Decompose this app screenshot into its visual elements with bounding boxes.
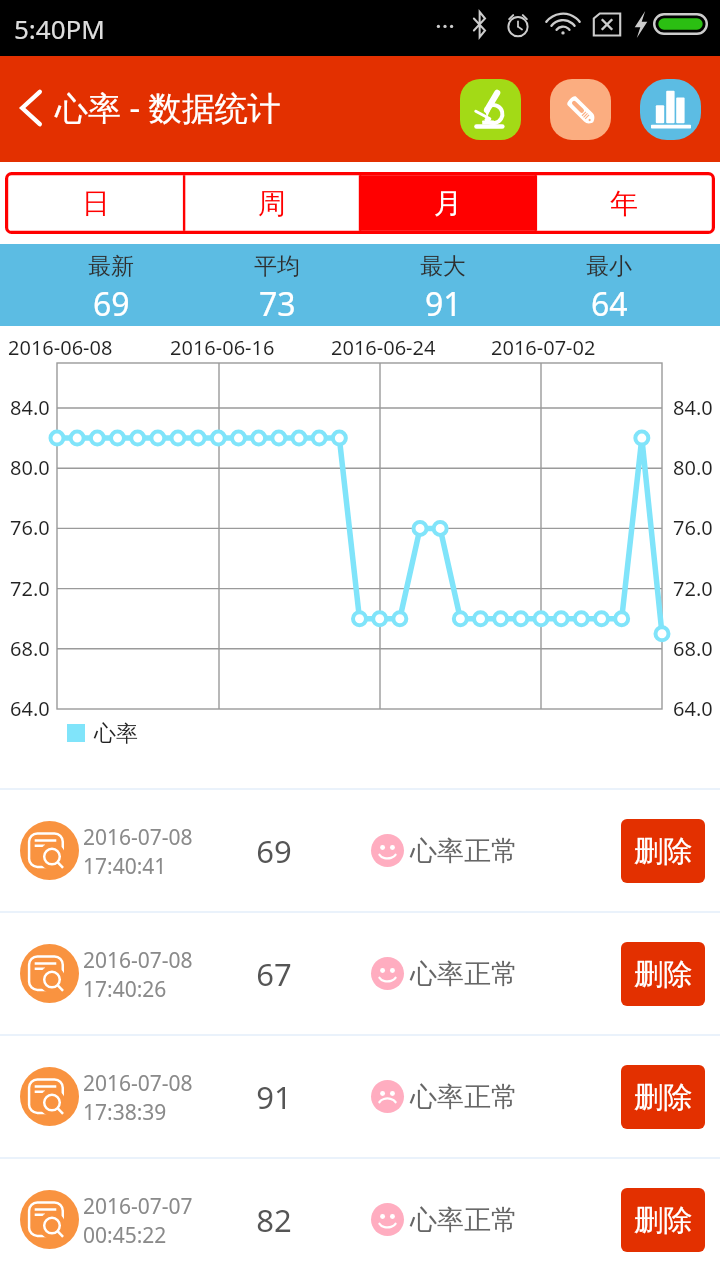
button[interactable]: 2016-07-07 <box>0 1159 720 1280</box>
staticText: 删除 <box>634 956 692 993</box>
staticText: 73 <box>259 282 296 326</box>
button[interactable]: 删除 <box>621 1188 705 1252</box>
button[interactable]: 日 <box>8 175 184 231</box>
staticText: 17:38:39 <box>83 1098 167 1127</box>
staticText: 心率正常 <box>410 834 518 868</box>
staticText: 72.0 <box>10 575 50 602</box>
staticText: 2016-07-07 <box>83 1192 193 1221</box>
staticText: 17:40:41 <box>83 852 167 881</box>
button[interactable]: 月 <box>360 175 536 231</box>
staticText: 76.0 <box>10 514 50 541</box>
staticText: 日 <box>82 186 110 221</box>
staticText: 84.0 <box>673 394 713 421</box>
staticText: 69 <box>93 282 130 326</box>
staticText: 心率正常 <box>410 1080 518 1114</box>
staticText: 5:40PM <box>14 11 105 46</box>
button[interactable]: 删除 <box>621 819 705 883</box>
staticText: 00:45:22 <box>83 1221 167 1250</box>
button[interactable]: 2016-07-08 <box>0 913 720 1034</box>
staticText: 删除 <box>634 833 692 870</box>
staticText: 删除 <box>634 1079 692 1116</box>
staticText: 年 <box>610 186 638 221</box>
staticText: 最小 <box>586 252 632 281</box>
staticText: 64 <box>591 282 628 326</box>
button[interactable]: 删除 <box>621 1065 705 1129</box>
staticText: 心率 - 数据统计 <box>55 85 281 130</box>
staticText: 68.0 <box>10 635 50 662</box>
staticText: 84.0 <box>10 394 50 421</box>
staticText: 64.0 <box>673 695 713 722</box>
button[interactable]: 心率 - 数据统计 <box>0 77 291 142</box>
button[interactable]: 删除 <box>621 942 705 1006</box>
staticText: 17:40:26 <box>83 975 167 1004</box>
staticText: 80.0 <box>10 454 50 481</box>
staticText: 2016-06-24 <box>331 334 436 361</box>
button[interactable]: 周 <box>184 175 360 231</box>
staticText: 最新 <box>88 252 134 281</box>
staticText: 2016-07-08 <box>83 946 193 975</box>
staticText: 76.0 <box>673 514 713 541</box>
staticText: 2016-07-08 <box>83 823 193 852</box>
button[interactable]: Edit <box>550 79 611 140</box>
staticText: 67 <box>239 953 309 995</box>
staticText: 2016-06-16 <box>170 334 275 361</box>
staticText: 2016-06-08 <box>8 334 113 361</box>
staticText: 月 <box>434 186 462 221</box>
staticText: 64.0 <box>10 695 50 722</box>
staticText: 心率 <box>94 720 138 748</box>
staticText: 68.0 <box>673 635 713 662</box>
staticText: 2016-07-08 <box>83 1069 193 1098</box>
staticText: 最大 <box>420 252 466 281</box>
staticText: 周 <box>258 186 286 221</box>
staticText: 2016-07-02 <box>491 334 596 361</box>
staticText: 91 <box>239 1076 309 1118</box>
staticText: 72.0 <box>673 575 713 602</box>
staticText: 69 <box>239 830 309 872</box>
staticText: 82 <box>239 1199 309 1241</box>
button[interactable]: 2016-07-08 <box>0 790 720 911</box>
button[interactable]: Statistics <box>640 79 701 140</box>
staticText: 心率正常 <box>410 1203 518 1237</box>
staticText: 80.0 <box>673 454 713 481</box>
staticText: 平均 <box>254 252 300 281</box>
staticText: 心率正常 <box>410 957 518 991</box>
button[interactable]: Measure <box>460 79 521 140</box>
staticText: 删除 <box>634 1202 692 1239</box>
staticText: 91 <box>425 282 462 326</box>
button[interactable]: 年 <box>536 175 712 231</box>
button[interactable]: 2016-07-08 <box>0 1036 720 1157</box>
